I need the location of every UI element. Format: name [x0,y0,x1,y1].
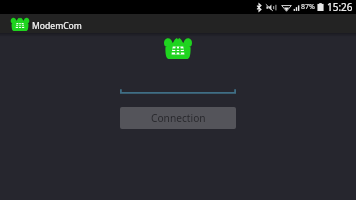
staticText: 15:26 [327,0,353,14]
staticText: 87% [301,2,315,12]
staticText: ModemCom [32,20,82,32]
button[interactable]: Address input field [120,78,236,94]
button[interactable]: Connection [120,107,236,129]
staticText: Connection [151,111,206,125]
